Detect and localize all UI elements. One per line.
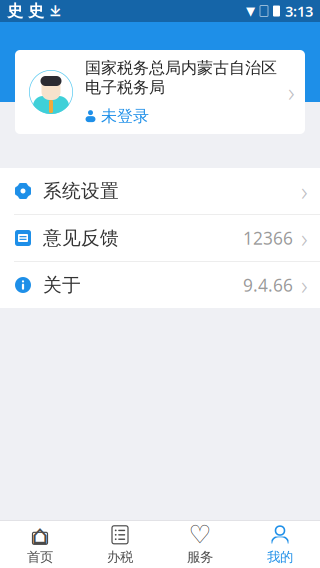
staticText: ⌂ (31, 520, 48, 550)
staticText: 我的 (267, 549, 293, 565)
staticText: 意见反馈 (43, 226, 119, 249)
staticText: 办税 (107, 549, 133, 565)
staticText: 国家税务总局内蒙古自治区电子税务局 (85, 58, 277, 97)
button[interactable]: 我的 (240, 521, 320, 568)
button[interactable]: 国家税务总局内蒙古自治区电子税务局 (15, 50, 305, 134)
button[interactable]: 意见反馈 (0, 215, 320, 261)
staticText: 服务 (187, 549, 213, 565)
button[interactable]: ⌂ (0, 521, 80, 568)
staticText: 未登录 (101, 106, 149, 126)
staticText: 史 (7, 1, 23, 21)
button[interactable]: 办税 (80, 521, 160, 568)
staticText: › (301, 221, 308, 255)
staticText: 9.4.66 (243, 273, 293, 296)
button[interactable]: 系统设置 (0, 168, 320, 214)
staticText: 关于 (43, 273, 81, 296)
staticText: 史 (28, 1, 44, 21)
staticText: › (301, 268, 308, 302)
staticText: › (288, 75, 295, 109)
button[interactable]: ♡ (160, 521, 240, 568)
staticText: 3:13 (285, 1, 313, 21)
staticText: 12366 (243, 226, 293, 249)
staticText: ♡ (188, 520, 211, 549)
staticText: › (301, 174, 308, 208)
staticText: 系统设置 (43, 179, 119, 202)
staticText: ▼ (246, 4, 255, 18)
button[interactable]: 关于 (0, 262, 320, 308)
staticText: 首页 (27, 549, 53, 565)
staticText: ⤓ (49, 2, 62, 20)
